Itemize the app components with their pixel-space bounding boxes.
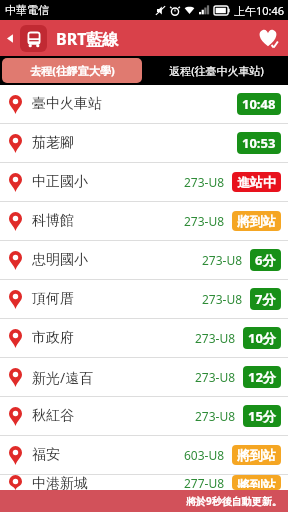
staticText: 頂何厝 — [32, 290, 74, 308]
staticText: 273-U8 — [202, 291, 243, 307]
staticText: 273-U8 — [195, 408, 236, 424]
staticText: 進站中 — [237, 174, 276, 190]
button[interactable]: 科博館 — [0, 202, 288, 240]
staticText: 273-U8 — [184, 174, 225, 190]
staticText: 中正國小 — [32, 173, 88, 191]
button[interactable]: 新光/遠百 — [0, 358, 288, 396]
staticText: 277-U8 — [184, 475, 225, 490]
staticText: 忠明國小 — [32, 251, 88, 269]
staticText: 中港新城 — [32, 475, 88, 490]
staticText: 市政府 — [32, 329, 74, 347]
staticText: 273-U8 — [202, 252, 243, 268]
staticText: 福安 — [32, 446, 60, 464]
staticText: 臺中火車站 — [32, 95, 102, 113]
button[interactable]: 頂何厝 — [0, 280, 288, 318]
staticText: 秋紅谷 — [32, 407, 74, 425]
staticText: 將到站 — [237, 447, 276, 463]
button[interactable]: 秋紅谷 — [0, 397, 288, 435]
button[interactable]: 福安 — [0, 436, 288, 474]
staticText: 12分 — [248, 368, 276, 386]
button[interactable]: 臺中火車站 — [0, 85, 288, 123]
staticText: BRT藍線 — [56, 28, 119, 50]
staticText: 將到站 — [237, 477, 276, 488]
staticText: 將於9秒後自動更新。 — [186, 494, 282, 508]
staticText: 10分 — [248, 329, 276, 347]
staticText: 中華電信 — [5, 3, 49, 17]
button[interactable]: 返程(往臺中火車站) — [146, 58, 286, 83]
staticText: 273-U8 — [195, 330, 236, 346]
staticText: 273-U8 — [195, 369, 236, 385]
staticText: 273-U8 — [184, 213, 225, 229]
button[interactable]: 去程(往靜宜大學) — [2, 58, 142, 83]
staticText: 返程(往臺中火車站) — [169, 63, 264, 78]
button[interactable]: 茄荖腳 — [0, 124, 288, 162]
button[interactable]: Back — [0, 20, 20, 56]
staticText: 10:53 — [242, 134, 276, 152]
button[interactable]: 忠明國小 — [0, 241, 288, 279]
button[interactable]: 中港新城 — [0, 475, 288, 490]
staticText: 10:48 — [242, 95, 276, 113]
button[interactable]: 市政府 — [0, 319, 288, 357]
button[interactable]: Favourite — [248, 20, 288, 56]
staticText: 603-U8 — [184, 447, 225, 463]
staticText: 去程(往靜宜大學) — [30, 63, 115, 78]
staticText: 新光/遠百 — [32, 368, 94, 387]
staticText: 6分 — [255, 251, 276, 269]
staticText: 將到站 — [237, 213, 276, 229]
staticText: 15分 — [248, 407, 276, 425]
staticText: 科博館 — [32, 212, 74, 230]
staticText: 7分 — [255, 290, 276, 308]
button[interactable]: 中正國小 — [0, 163, 288, 201]
staticText: 茄荖腳 — [32, 134, 74, 152]
staticText: 上午10:46 — [234, 3, 285, 18]
